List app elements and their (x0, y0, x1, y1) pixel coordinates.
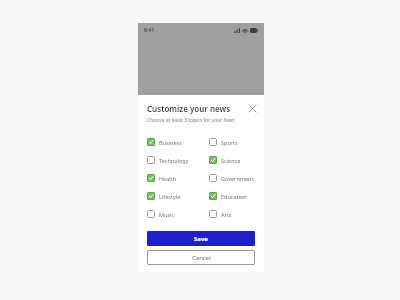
button[interactable]: Lifestyle (147, 191, 181, 201)
button[interactable]: Arts (209, 209, 232, 219)
button[interactable]: Close (245, 101, 259, 115)
button[interactable]: Sports (209, 137, 238, 147)
button[interactable]: Business (147, 137, 182, 147)
button[interactable]: Education (209, 191, 247, 201)
button[interactable]: Government (209, 173, 254, 183)
staticText: Music (159, 211, 175, 218)
button[interactable]: Health (147, 173, 177, 183)
staticText: Cancel (192, 254, 211, 262)
staticText: Science (221, 157, 241, 164)
staticText: Sports (221, 139, 238, 146)
staticText: Technology (159, 157, 189, 164)
button[interactable]: Save (147, 231, 255, 246)
staticText: 9:41 (144, 27, 154, 34)
button[interactable]: Music (147, 209, 175, 219)
staticText: Save (194, 235, 208, 243)
button[interactable]: Cancel (147, 250, 255, 265)
staticText: Customize your news (147, 103, 231, 114)
button[interactable]: Science (209, 155, 241, 165)
staticText: Health (159, 175, 177, 182)
button[interactable]: Technology (147, 155, 189, 165)
staticText: Arts (221, 211, 232, 218)
staticText: Lifestyle (159, 193, 181, 200)
staticText: Government (221, 175, 254, 182)
staticText: Choose at least 3 topics for your feed (147, 117, 235, 124)
staticText: Business (159, 139, 182, 146)
staticText: Education (221, 193, 247, 200)
